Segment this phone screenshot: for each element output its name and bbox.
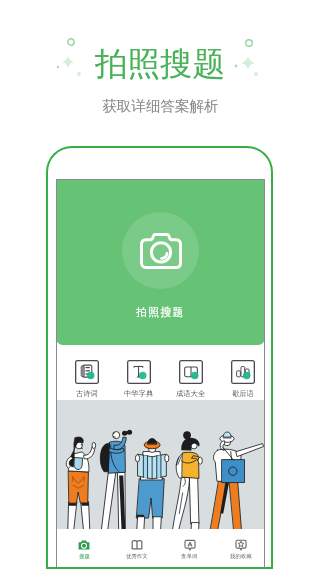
staticText: 拍照搜题 bbox=[95, 44, 225, 85]
button[interactable]: 成语大全 bbox=[170, 345, 212, 400]
staticText: 拍照搜题 bbox=[136, 305, 185, 319]
button[interactable]: 查单词 bbox=[167, 529, 211, 569]
button[interactable]: 拍照搜题 bbox=[122, 212, 199, 289]
button[interactable]: 搜题 bbox=[62, 529, 106, 569]
staticText: 我的收藏 bbox=[230, 553, 252, 560]
staticText: 歇后语 bbox=[232, 389, 254, 398]
staticText: 成语大全 bbox=[176, 389, 206, 398]
staticText: 查单词 bbox=[181, 553, 198, 560]
staticText: 中华字典 bbox=[124, 389, 154, 398]
button[interactable]: 我的收藏 bbox=[219, 529, 263, 569]
button[interactable]: 优秀作文 bbox=[115, 529, 159, 569]
staticText: 古诗词 bbox=[76, 389, 98, 398]
button[interactable]: 歇后语 bbox=[222, 345, 264, 400]
button[interactable]: 古诗词 bbox=[66, 345, 108, 400]
staticText: 获取详细答案解析 bbox=[102, 97, 219, 115]
staticText: 搜题 bbox=[79, 553, 90, 560]
staticText: 优秀作文 bbox=[126, 553, 148, 560]
button[interactable]: 中华字典 bbox=[118, 345, 160, 400]
